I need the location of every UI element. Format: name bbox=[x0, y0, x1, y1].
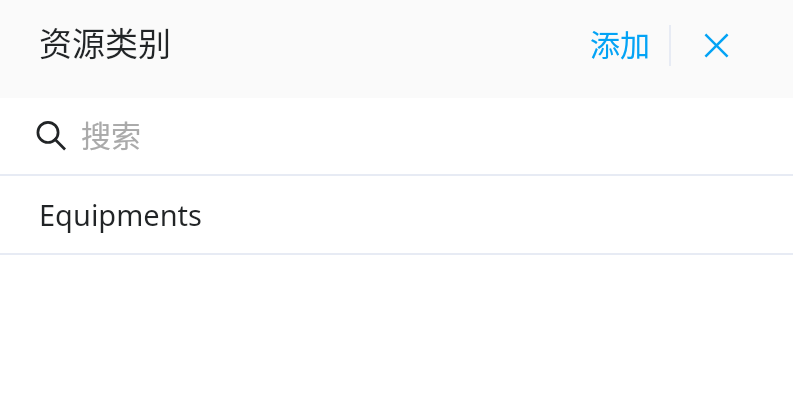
staticText: 搜索 bbox=[81, 112, 141, 155]
staticText: 添加 bbox=[590, 21, 650, 64]
staticText: Equipments bbox=[39, 195, 202, 234]
button[interactable]: Equipments bbox=[0, 176, 793, 253]
staticText: 资源类别 bbox=[39, 18, 171, 66]
button[interactable]: 搜索 bbox=[0, 98, 793, 174]
button[interactable]: Close bbox=[680, 9, 753, 82]
button[interactable]: 添加 bbox=[574, 6, 663, 92]
